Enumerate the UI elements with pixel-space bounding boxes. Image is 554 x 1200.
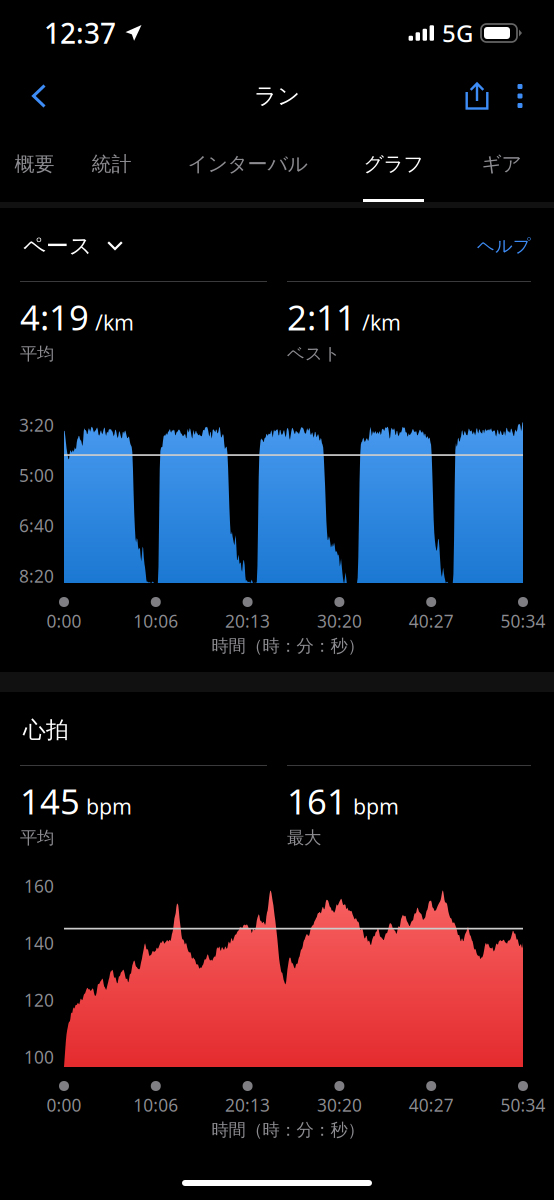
button[interactable]: ペース (0, 229, 135, 263)
button[interactable]: 概要 (0, 126, 94, 202)
staticText: /km (362, 308, 401, 336)
staticText: bpm (353, 792, 399, 820)
staticText: 50:34 (500, 609, 545, 632)
staticText: 統計 (91, 152, 131, 176)
button[interactable]: 統計 (51, 126, 171, 202)
staticText: 3:20 (19, 413, 54, 436)
staticText: 2:11 (287, 294, 356, 340)
button[interactable]: 心拍 (0, 713, 81, 747)
staticText: ギア (481, 152, 521, 176)
staticText: 40:27 (409, 609, 454, 632)
staticText: 5:00 (19, 464, 54, 487)
staticText: 30:20 (317, 609, 362, 632)
staticText: 100 (24, 1045, 54, 1068)
staticText: bpm (86, 792, 132, 820)
staticText: ラン (254, 82, 300, 110)
staticText: 最大 (287, 827, 321, 848)
button[interactable]: 共有 (454, 71, 500, 121)
staticText: 40:27 (409, 1093, 454, 1116)
staticText: 140 (24, 931, 54, 954)
staticText: 10:06 (133, 1093, 178, 1116)
staticText: 8:20 (19, 564, 54, 587)
staticText: 0:00 (46, 1093, 81, 1116)
staticText: /km (95, 308, 134, 336)
staticText: インターバル (187, 152, 307, 176)
button[interactable]: その他 (500, 71, 540, 121)
staticText: 0:00 (46, 609, 81, 632)
staticText: ペース (23, 232, 92, 260)
staticText: 160 (24, 874, 54, 897)
staticText: 30:20 (317, 1093, 362, 1116)
staticText: 4:19 (20, 294, 89, 340)
staticText: 161 (287, 778, 347, 824)
staticText: ヘルプ (477, 235, 531, 257)
staticText: 時間（時：分：秒） (211, 1119, 364, 1141)
staticText: 10:06 (133, 609, 178, 632)
staticText: 平均 (20, 343, 54, 364)
staticText: 5G (442, 17, 473, 49)
staticText: 12:37 (44, 14, 116, 52)
button[interactable]: グラフ (333, 126, 453, 202)
staticText: グラフ (363, 152, 423, 176)
staticText: 平均 (20, 827, 54, 848)
staticText: 心拍 (23, 716, 69, 744)
staticText: 145 (20, 778, 80, 824)
staticText: 20:13 (225, 609, 270, 632)
staticText: ベスト (287, 343, 341, 364)
staticText: 120 (24, 988, 54, 1011)
staticText: 50:34 (500, 1093, 545, 1116)
staticText: 20:13 (225, 1093, 270, 1116)
staticText: 時間（時：分：秒） (211, 635, 364, 657)
button[interactable]: ギア (441, 126, 554, 202)
button[interactable]: インターバル (187, 126, 307, 202)
button[interactable]: 戻る (16, 71, 62, 121)
staticText: 6:40 (19, 514, 54, 537)
button[interactable]: ヘルプ (465, 229, 543, 263)
staticText: 概要 (14, 152, 54, 176)
